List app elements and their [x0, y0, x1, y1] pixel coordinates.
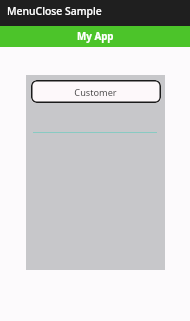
staticText: My App [77, 30, 114, 43]
staticText: MenuClose Sample [7, 4, 102, 18]
button[interactable]: My App [0, 26, 190, 47]
staticText: Customer [74, 86, 117, 99]
button[interactable]: Customer [31, 80, 161, 103]
button[interactable]: MenuClose Sample [0, 0, 190, 26]
